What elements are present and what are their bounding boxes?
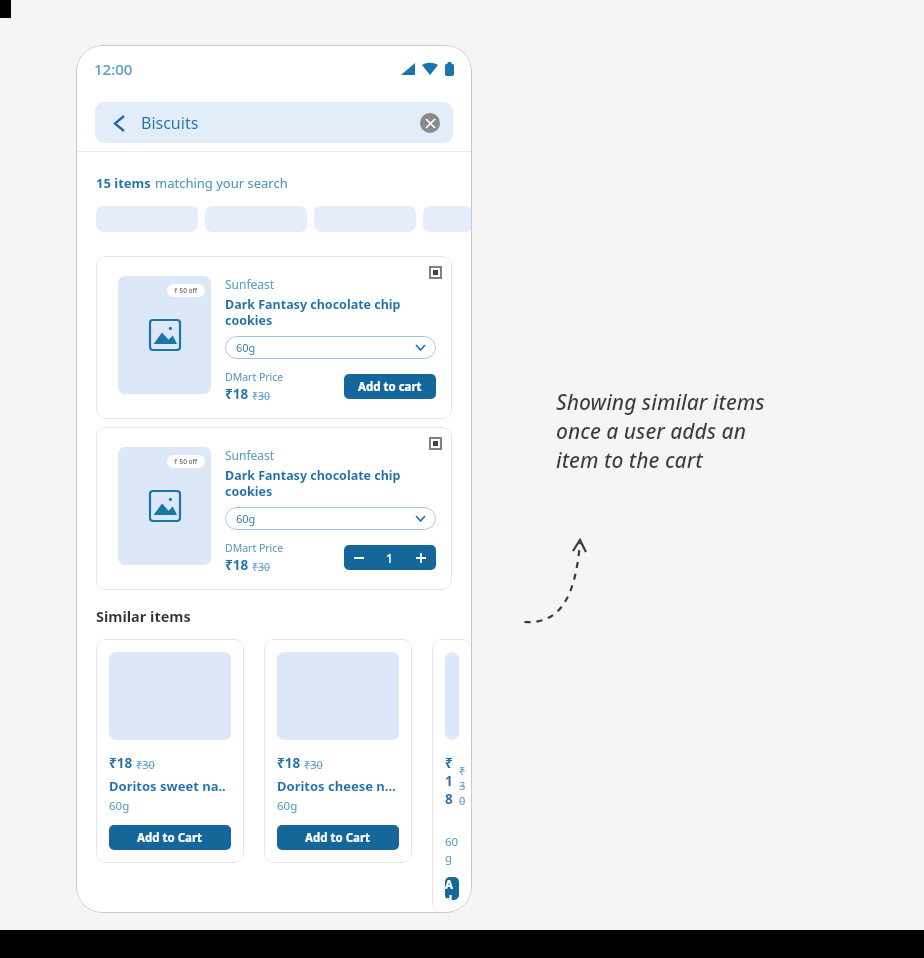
staticText: Showing similar items (556, 388, 765, 417)
button[interactable]: Increase quantity (405, 545, 436, 570)
staticText: ₹18 (225, 385, 249, 403)
button[interactable]: Add to Cart (277, 825, 399, 850)
button[interactable]: ₹18 (432, 639, 472, 913)
staticText: Dark Fantasy chocolate chip cookies (225, 467, 436, 499)
staticText: ₹ 50 off (174, 286, 198, 295)
button[interactable]: Options (429, 437, 442, 450)
button[interactable]: 60g (225, 507, 436, 530)
staticText: DMart Price (225, 541, 284, 555)
button[interactable]: ₹18 (264, 639, 412, 863)
staticText: ₹18 (109, 754, 133, 772)
button[interactable]: Add to Cart (445, 877, 459, 900)
staticText: once a user adds an (556, 417, 746, 446)
button[interactable]: Add to cart (344, 374, 436, 399)
button[interactable]: Filter (423, 206, 472, 232)
staticText: Add to cart (358, 379, 422, 395)
staticText: 60g (236, 511, 256, 526)
button[interactable]: Add to Cart (109, 825, 231, 850)
staticText: 15 items (96, 174, 155, 192)
staticText: ₹18 (225, 556, 249, 574)
button[interactable]: Clear search (420, 113, 440, 133)
staticText: Biscuits (141, 112, 199, 134)
staticText: 60g (277, 798, 298, 814)
staticText: Add to Cart (137, 830, 203, 846)
staticText: ₹30 (304, 757, 323, 772)
button[interactable]: Back (95, 102, 453, 143)
staticText: 60g (109, 798, 130, 814)
button[interactable]: Decrease quantity (344, 545, 374, 570)
button[interactable]: Options (96, 427, 452, 590)
button[interactable]: Options (429, 266, 442, 279)
staticText: ₹18 (445, 754, 459, 808)
staticText: 60g (236, 340, 256, 355)
staticText: Doritos sweet na.. (109, 777, 226, 795)
staticText: Sunfeast (225, 276, 275, 292)
staticText: matching your search (155, 174, 288, 192)
button[interactable]: Filter (96, 206, 198, 232)
staticText: Add to Cart (445, 877, 459, 900)
button[interactable]: Options (96, 256, 452, 419)
button[interactable]: ₹18 (96, 639, 244, 863)
staticText: ₹30 (252, 560, 271, 574)
staticText: ₹30 (136, 757, 155, 772)
staticText: Sunfeast (225, 447, 275, 463)
staticText: Add to Cart (305, 830, 371, 846)
staticText: ₹30 (252, 389, 271, 403)
button[interactable]: Filter (205, 206, 307, 232)
staticText: 12:00 (94, 59, 133, 79)
staticText: 60g (445, 834, 459, 866)
staticText: ₹ 50 off (174, 457, 198, 466)
staticText: Dark Fantasy chocolate chip cookies (225, 296, 436, 328)
staticText: item to the cart (556, 446, 703, 475)
staticText: Doritos cheese na.. (277, 777, 399, 795)
button[interactable]: Back (108, 112, 130, 134)
button[interactable]: 60g (225, 336, 436, 359)
staticText: ₹18 (277, 754, 301, 772)
staticText: Similar items (96, 606, 191, 626)
button[interactable]: Filter (314, 206, 416, 232)
staticText: 1 (386, 550, 393, 566)
staticText: DMart Price (225, 370, 284, 384)
